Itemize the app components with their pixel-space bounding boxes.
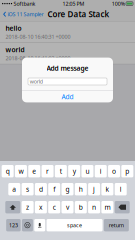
staticText: z	[26, 203, 29, 212]
staticText: Add message	[46, 64, 88, 72]
button[interactable]: n	[88, 201, 100, 213]
staticText: j	[93, 185, 95, 194]
button[interactable]: m	[101, 201, 113, 213]
button[interactable]: l	[115, 183, 127, 195]
staticText: Add	[61, 92, 73, 101]
staticText: q	[6, 167, 10, 176]
button[interactable]: c	[48, 201, 60, 213]
button[interactable]: f	[48, 183, 60, 195]
staticText: u	[85, 167, 89, 176]
button[interactable]: d	[35, 183, 47, 195]
button[interactable]: r	[42, 165, 54, 177]
staticText: s	[26, 185, 29, 194]
button[interactable]: hello	[0, 22, 135, 43]
staticText: l	[120, 185, 122, 194]
staticText: p	[125, 167, 129, 176]
staticText: m	[104, 203, 110, 212]
button[interactable]: b	[75, 201, 87, 213]
staticText: t	[60, 167, 62, 176]
button[interactable]: world	[0, 43, 135, 64]
button[interactable]: space	[47, 219, 103, 231]
staticText: k	[105, 185, 109, 194]
staticText: 2018-08-10 16:40:31 +0000	[5, 33, 70, 40]
staticText: 12:05 PM	[63, 0, 85, 7]
staticText: Core Data Stack	[47, 9, 109, 19]
staticText: w	[18, 167, 23, 176]
button[interactable]: x	[35, 201, 47, 213]
button[interactable]: h	[75, 183, 87, 195]
button[interactable]: Delete	[115, 201, 130, 213]
button[interactable]: Shift	[5, 201, 20, 213]
button[interactable]: o	[108, 165, 120, 177]
button[interactable]: Next keyboard	[22, 219, 33, 231]
button[interactable]: w	[15, 165, 27, 177]
staticText: b	[79, 203, 83, 212]
staticText: f	[53, 185, 55, 194]
button[interactable]: Dictation	[34, 219, 45, 231]
button[interactable]: p	[121, 165, 133, 177]
button[interactable]: g	[61, 183, 73, 195]
staticText: g	[65, 185, 69, 194]
button[interactable]: q	[2, 165, 14, 177]
staticText: i	[100, 167, 102, 176]
staticText: x	[39, 203, 43, 212]
staticText: Softbank	[13, 0, 35, 7]
button[interactable]: a	[8, 183, 20, 195]
button[interactable]: v	[61, 201, 73, 213]
staticText: v	[66, 203, 69, 212]
staticText: a	[12, 185, 16, 194]
button[interactable]: e	[28, 165, 40, 177]
button[interactable]: i	[95, 165, 107, 177]
button[interactable]: t	[55, 165, 67, 177]
staticText: r	[46, 167, 49, 176]
staticText: world	[5, 45, 24, 54]
staticText: 123	[9, 222, 18, 229]
staticText: world	[30, 78, 43, 85]
button[interactable]: s	[22, 183, 34, 195]
button[interactable]: Add	[22, 91, 113, 102]
button[interactable]: return	[104, 219, 129, 231]
staticText: c	[53, 203, 56, 212]
button[interactable]: j	[88, 183, 100, 195]
button[interactable]: u	[81, 165, 93, 177]
button[interactable]: iOS 11 Sampler	[0, 7, 43, 21]
button[interactable]: 123	[6, 219, 21, 231]
staticText: iOS 11 Sampler	[7, 11, 43, 18]
staticText: 2018-08-10 16:41:02 +0000	[5, 55, 70, 62]
staticText: n	[92, 203, 96, 212]
staticText: o	[112, 167, 116, 176]
staticText: 100%	[112, 0, 125, 7]
staticText: h	[79, 185, 83, 194]
button[interactable]: z	[22, 201, 34, 213]
staticText: y	[73, 167, 76, 176]
staticText: d	[39, 185, 43, 194]
button[interactable]: y	[68, 165, 80, 177]
button[interactable]: k	[101, 183, 113, 195]
staticText: return	[109, 222, 124, 229]
staticText: hello	[5, 24, 21, 33]
staticText: e	[32, 167, 36, 176]
staticText: space	[67, 222, 82, 229]
